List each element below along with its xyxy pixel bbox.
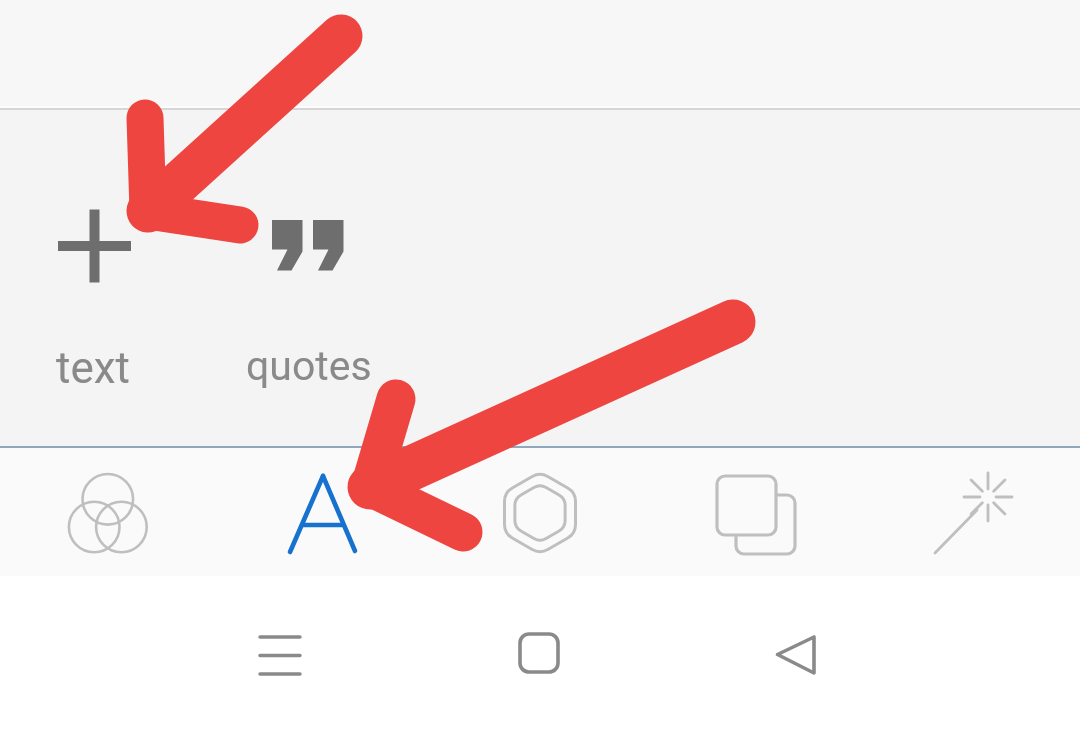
button[interactable]: Filters xyxy=(0,448,216,576)
button[interactable]: Text tool xyxy=(216,448,432,576)
button[interactable]: Shapes xyxy=(432,448,648,576)
button[interactable]: Effects xyxy=(864,448,1080,576)
button[interactable]: Layers xyxy=(648,448,864,576)
button[interactable]: Back xyxy=(690,576,910,730)
button[interactable]: quotes xyxy=(232,186,412,402)
staticText: text xyxy=(56,342,130,394)
button[interactable]: text xyxy=(16,186,178,402)
staticText: quotes xyxy=(246,342,372,390)
button[interactable]: Home xyxy=(430,576,650,730)
button[interactable]: Recent apps xyxy=(170,576,390,730)
